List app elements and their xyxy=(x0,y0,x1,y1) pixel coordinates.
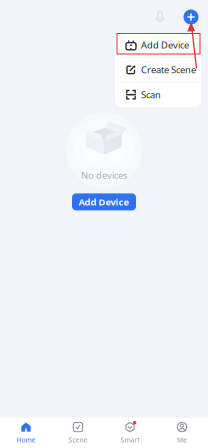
staticText: Me xyxy=(177,436,187,444)
button[interactable]: Scene xyxy=(52,420,104,446)
staticText: Create Scene xyxy=(141,63,196,76)
button[interactable]: Me xyxy=(156,420,208,446)
button[interactable]: Create Scene xyxy=(115,58,201,82)
button[interactable]: Scan xyxy=(115,82,201,107)
staticText: No devices xyxy=(81,169,127,181)
staticText: Add Device xyxy=(141,39,189,51)
staticText: Add Device xyxy=(78,196,129,208)
button[interactable]: Voice control xyxy=(149,6,171,28)
button[interactable]: Add Device xyxy=(115,33,201,58)
button[interactable]: Add Device xyxy=(72,193,136,210)
staticText: Smart xyxy=(120,436,139,444)
button[interactable]: Smart xyxy=(104,420,156,446)
staticText: Home xyxy=(16,436,35,444)
staticText: Scene xyxy=(68,436,87,444)
button[interactable]: Home xyxy=(0,420,52,446)
button[interactable]: Add device or scene xyxy=(180,6,202,28)
staticText: Scan xyxy=(141,88,161,101)
